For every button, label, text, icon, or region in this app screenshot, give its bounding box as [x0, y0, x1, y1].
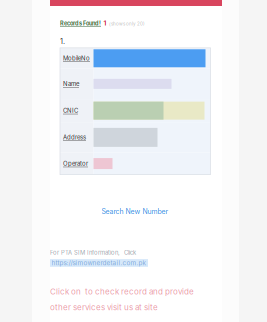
staticText: For PTA SIM Information, Click — [50, 249, 136, 256]
staticText: https://simownerdetail.com.pk — [51, 259, 146, 267]
staticText: CNIC — [63, 107, 78, 114]
staticText: Address — [63, 134, 86, 141]
staticText: 1. — [60, 37, 65, 46]
staticText: 1 — [103, 19, 106, 27]
staticText: Search New Number — [101, 207, 168, 216]
staticText: Records Found! — [60, 20, 101, 27]
staticText: other services visit us at site — [50, 302, 158, 312]
staticText: MobileNo — [63, 55, 90, 62]
staticText: Operator — [63, 160, 88, 167]
button[interactable]: Search New Number — [60, 206, 210, 218]
staticText: Click on to check record and provide — [50, 287, 194, 296]
staticText: (shows only 20) — [109, 21, 145, 26]
staticText: Name — [63, 80, 79, 87]
button[interactable]: https://simownerdetail.com.pk — [50, 259, 148, 267]
